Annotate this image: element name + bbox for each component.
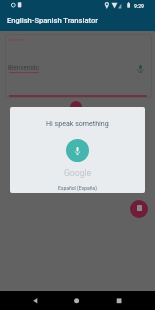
button[interactable]: Back [26,291,45,310]
staticText: Bienvenido [8,64,40,72]
button[interactable]: Record [70,101,82,113]
button[interactable] [5,34,152,98]
staticText: Google [64,168,92,178]
button[interactable]: Recent apps [109,291,128,310]
button[interactable]: Stop recording [130,200,148,218]
staticText: Spanish [9,37,24,42]
staticText: Español (España) [58,185,97,191]
button[interactable]: Speak [133,62,147,76]
button[interactable]: Home [67,291,86,310]
staticText: Hi speak something [46,119,109,127]
staticText: 9:29 [134,3,144,9]
staticText: English-Spanish Translator [7,16,98,25]
button[interactable]: Microphone [66,139,89,162]
